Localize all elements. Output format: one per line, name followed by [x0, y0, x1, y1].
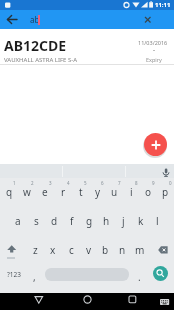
staticText: 9 — [152, 180, 155, 186]
staticText: e — [42, 185, 48, 199]
staticText: f — [70, 214, 74, 228]
button[interactable] — [34, 296, 44, 304]
button[interactable]: 6 — [89, 178, 106, 206]
staticText: k — [138, 214, 144, 228]
staticText: x — [50, 243, 56, 257]
staticText: n — [119, 243, 126, 257]
button[interactable]: s — [27, 206, 45, 235]
button[interactable]: b — [97, 235, 114, 264]
staticText: d — [51, 214, 58, 228]
button[interactable]: , — [27, 270, 42, 283]
button[interactable]: j — [115, 206, 132, 235]
staticText: 7 — [118, 180, 121, 186]
button[interactable]: d — [45, 206, 63, 235]
button[interactable] — [144, 133, 167, 156]
button[interactable]: h — [98, 206, 115, 235]
staticText: w — [23, 185, 31, 199]
staticText: 3 — [49, 180, 52, 186]
button[interactable] — [0, 235, 26, 264]
staticText: i — [130, 185, 133, 199]
button[interactable]: 1 — [0, 178, 18, 206]
staticText: p — [162, 185, 169, 199]
staticText: c — [69, 243, 74, 257]
staticText: z — [33, 243, 38, 257]
button[interactable] — [141, 13, 154, 26]
button[interactable]: a — [9, 206, 27, 235]
staticText: 8 — [135, 180, 138, 186]
staticText: 4 — [67, 180, 70, 186]
button[interactable]: c — [62, 235, 80, 264]
staticText: 1 — [13, 180, 16, 186]
staticText: q — [6, 185, 13, 199]
button[interactable]: 8 — [123, 178, 140, 206]
staticText: 6 — [101, 180, 104, 186]
button[interactable]: k — [132, 206, 149, 235]
staticText: 2 — [31, 180, 34, 186]
button[interactable]: 4 — [54, 178, 72, 206]
button[interactable]: f — [63, 206, 81, 235]
button[interactable]: 7 — [106, 178, 123, 206]
staticText: r — [61, 185, 66, 199]
staticText: t — [79, 185, 83, 199]
button[interactable]: 3 — [36, 178, 54, 206]
button[interactable]: 0 — [157, 178, 174, 206]
staticText: m — [135, 243, 145, 257]
button[interactable]: n — [114, 235, 131, 264]
button[interactable]: 2 — [18, 178, 36, 206]
staticText: 11/03/2016 — [138, 39, 168, 46]
staticText: 0 — [169, 180, 172, 186]
button[interactable]: ?123 — [1, 268, 27, 281]
button[interactable]: g — [81, 206, 98, 235]
button[interactable] — [83, 295, 92, 304]
staticText: . — [138, 270, 141, 283]
button[interactable] — [153, 266, 168, 281]
staticText: AB12CDE — [4, 36, 67, 54]
staticText: VAUXHALL ASTRA LIFE S-A — [4, 56, 78, 64]
staticText: a — [15, 214, 21, 228]
button[interactable]: x — [44, 235, 62, 264]
button[interactable] — [45, 268, 129, 281]
button[interactable] — [148, 235, 174, 264]
staticText: u — [111, 185, 118, 199]
button[interactable] — [0, 10, 19, 29]
button[interactable]: 9 — [140, 178, 157, 206]
staticText: v — [86, 243, 92, 257]
button[interactable]: . — [132, 270, 147, 283]
staticText: Expiry — [146, 56, 162, 63]
staticText: o — [145, 185, 152, 199]
staticText: ?123 — [7, 270, 21, 279]
staticText: y — [95, 185, 101, 199]
staticText: l — [156, 214, 159, 228]
staticText: , — [33, 270, 36, 283]
button[interactable]: m — [131, 235, 148, 264]
button[interactable] — [161, 167, 171, 177]
staticText: b — [102, 243, 109, 257]
staticText: ab — [30, 14, 40, 25]
button[interactable] — [128, 295, 137, 304]
button[interactable]: z — [26, 235, 44, 264]
button[interactable]: l — [149, 206, 166, 235]
staticText: g — [86, 214, 93, 228]
staticText: s — [34, 214, 39, 228]
button[interactable] — [160, 299, 170, 306]
staticText: j — [122, 214, 125, 228]
staticText: 5 — [84, 180, 87, 186]
button[interactable]: AB12CDE — [0, 29, 174, 64]
button[interactable]: v — [80, 235, 97, 264]
staticText: h — [103, 214, 110, 228]
button[interactable]: 5 — [72, 178, 89, 206]
staticText: 11:11 — [155, 1, 171, 9]
